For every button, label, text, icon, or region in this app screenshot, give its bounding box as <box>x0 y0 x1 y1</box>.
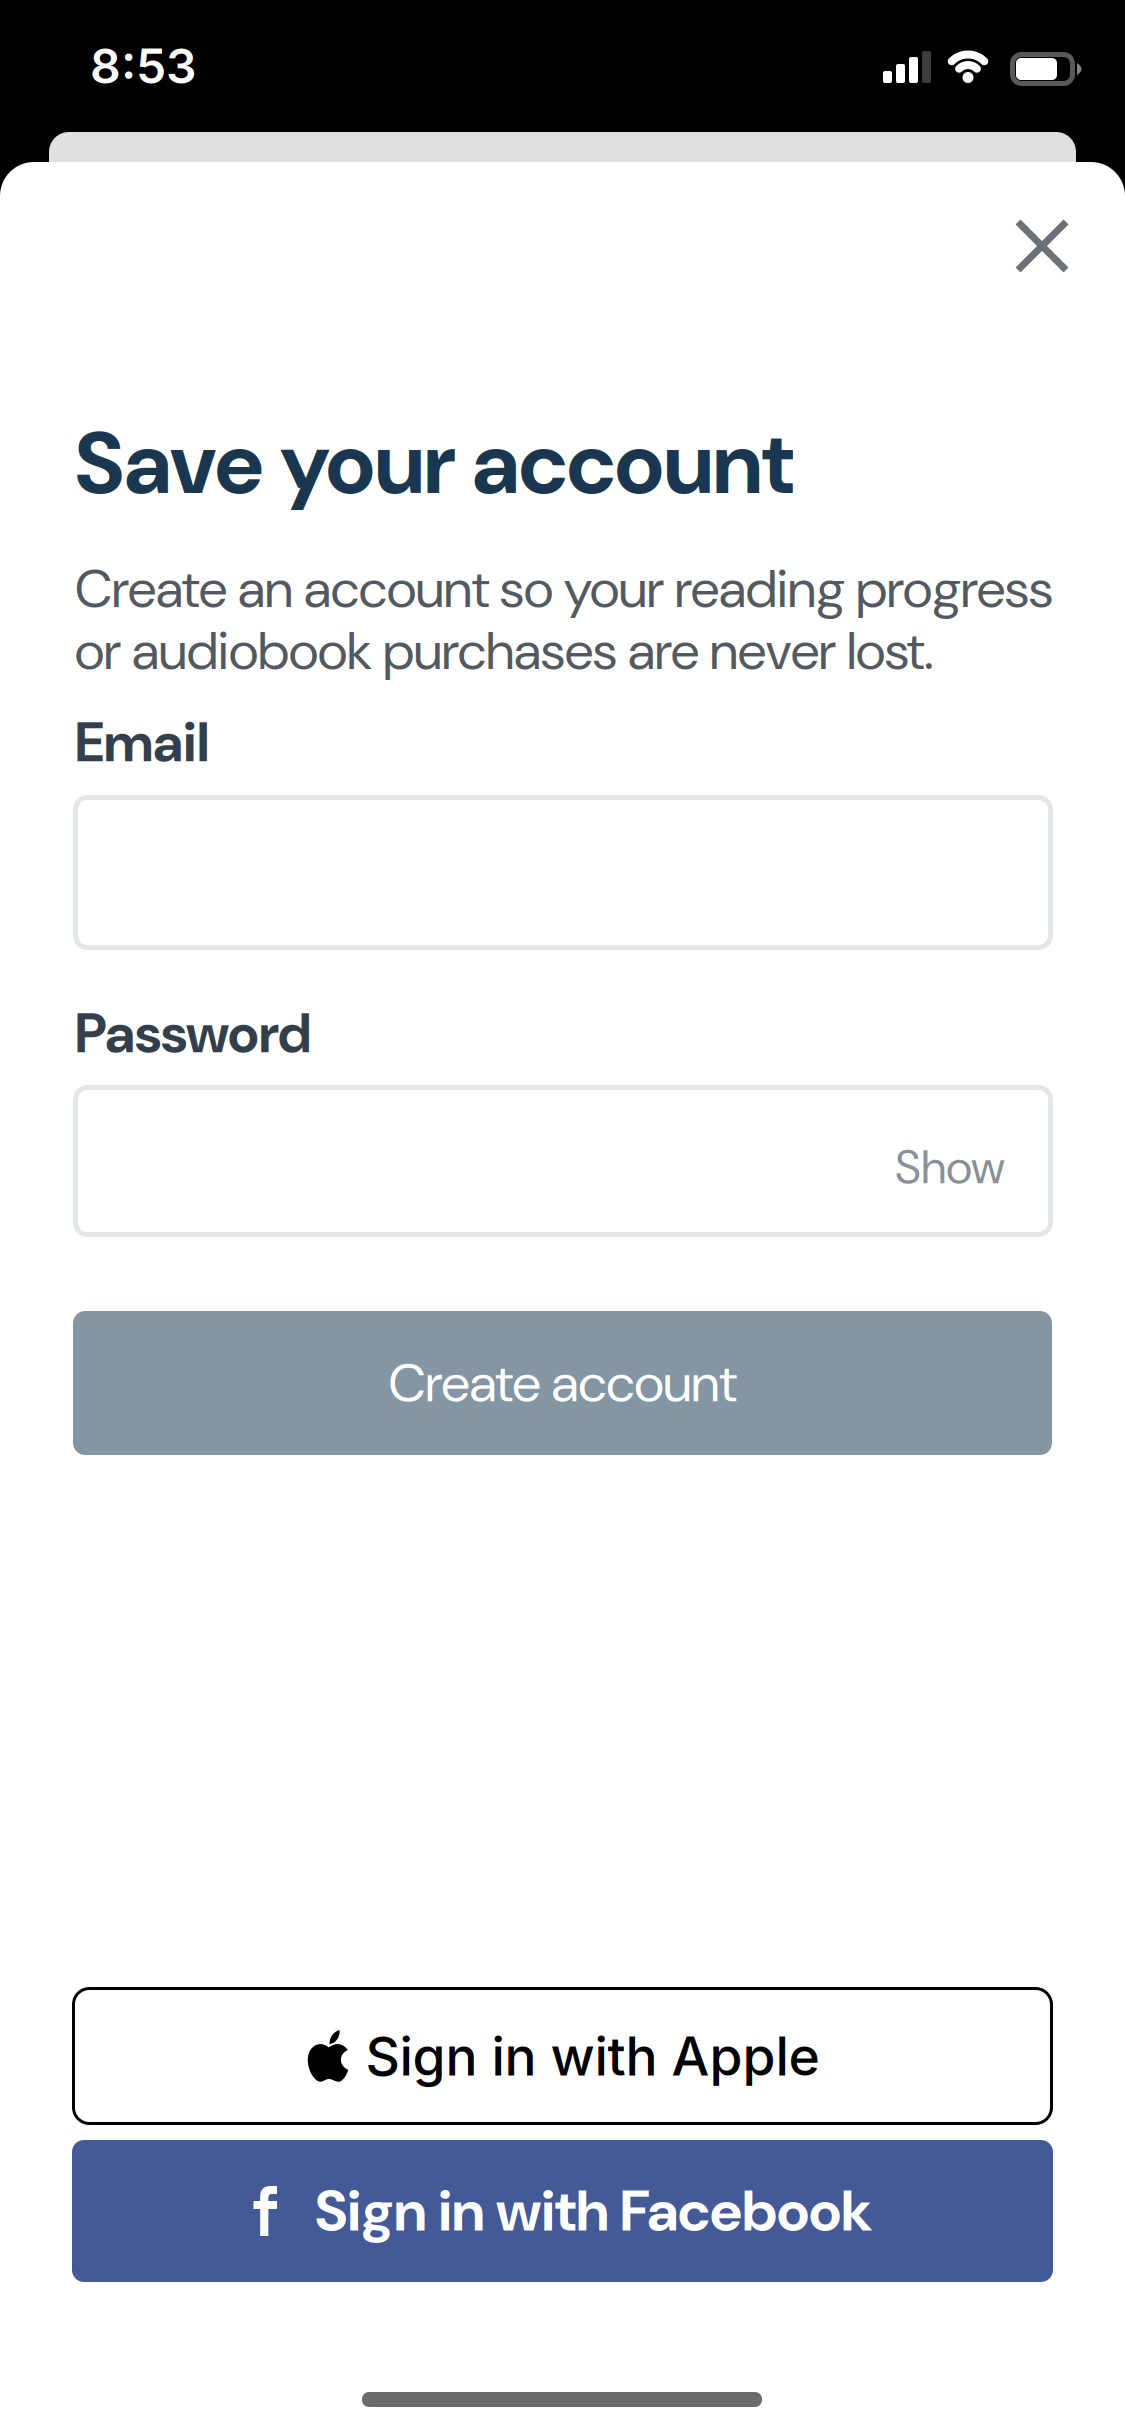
button[interactable]: Close <box>998 202 1086 290</box>
staticText: 8:53 <box>90 37 197 95</box>
staticText: Email <box>75 707 209 778</box>
button[interactable]: Sign in with Apple <box>72 1987 1053 2125</box>
staticText: Sign in with Apple <box>365 2024 819 2088</box>
staticText: Create an account so your reading progre… <box>75 554 1053 623</box>
staticText: Password <box>75 998 311 1069</box>
staticText: Show <box>895 1137 1005 1198</box>
button[interactable]: Create account <box>73 1311 1052 1455</box>
staticText: or audiobook purchases are never lost. <box>75 616 934 685</box>
button[interactable]: Show <box>895 1137 1005 1198</box>
button[interactable]: Sign in with Facebook <box>72 2140 1053 2282</box>
staticText: Create account <box>388 1348 736 1418</box>
staticText: Save your account <box>75 407 793 520</box>
staticText: Sign in with Facebook <box>315 2174 872 2248</box>
